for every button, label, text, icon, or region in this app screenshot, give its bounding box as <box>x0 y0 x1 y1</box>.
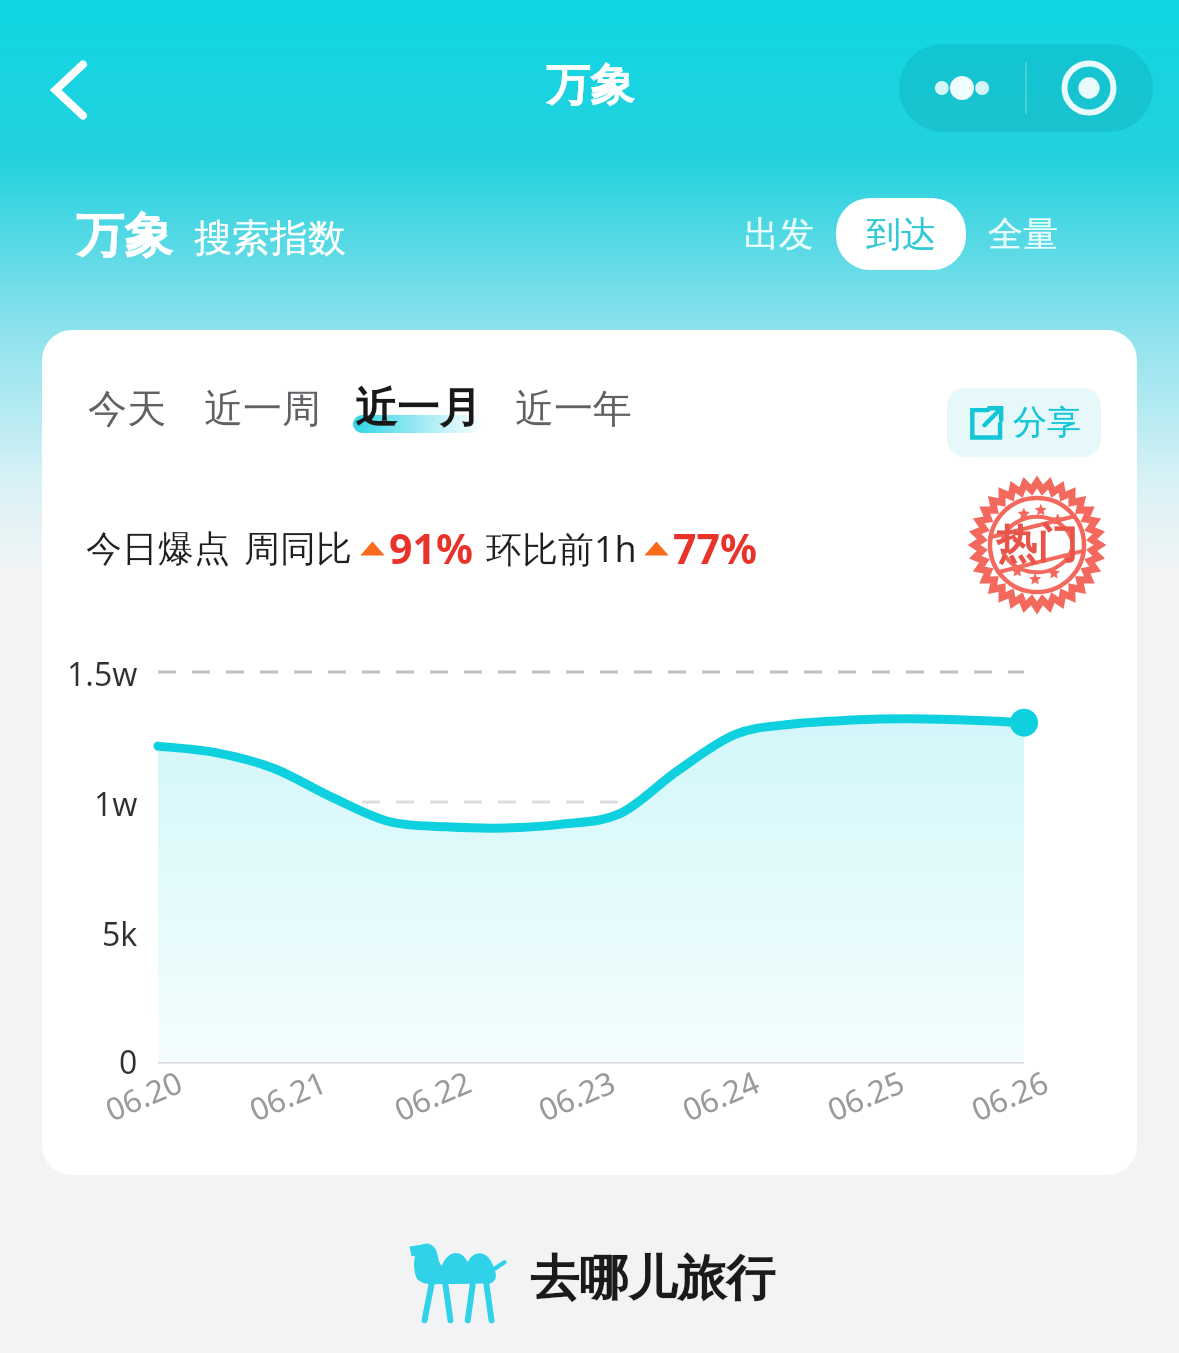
staticText: 万象 <box>546 58 634 113</box>
staticText: 1w <box>94 782 138 826</box>
staticText: 热门 <box>996 519 1078 571</box>
staticText: 搜索指数 <box>194 214 346 262</box>
button[interactable]: 分享 <box>947 388 1101 457</box>
button[interactable]: 更多 <box>899 44 1025 132</box>
staticText: 到达 <box>866 212 936 256</box>
button[interactable]: 到达 <box>836 198 966 270</box>
button[interactable]: 近一年 <box>513 384 634 433</box>
staticText: 06.22 <box>388 1060 478 1130</box>
button[interactable]: 返回 <box>34 50 106 130</box>
staticText: 去哪儿旅行 <box>530 1248 775 1310</box>
staticText: 今日爆点 <box>86 526 230 571</box>
staticText: 周同比 <box>244 526 352 571</box>
staticText: 今天 <box>88 384 166 433</box>
staticText: 万象 <box>76 206 172 266</box>
staticText: 近一月 <box>355 382 481 435</box>
button[interactable]: 胶囊菜单 <box>1027 44 1151 132</box>
staticText: 91% <box>389 520 473 576</box>
staticText: 近一年 <box>515 384 632 433</box>
button[interactable]: 今天 <box>86 384 168 433</box>
button[interactable]: 出发 <box>736 200 822 268</box>
staticText: 分享 <box>1013 401 1081 444</box>
staticText: 近一周 <box>204 384 321 433</box>
staticText: 环比前1h <box>486 524 637 573</box>
staticText: 全量 <box>988 212 1058 256</box>
staticText: 06.23 <box>532 1060 622 1130</box>
staticText: 0 <box>119 1040 138 1084</box>
button[interactable]: 近一周 <box>202 384 323 433</box>
staticText: 06.25 <box>821 1060 911 1130</box>
button[interactable]: 近一月 <box>353 382 483 435</box>
staticText: 77% <box>673 520 757 576</box>
staticText: 06.26 <box>965 1060 1055 1130</box>
staticText: 1.5w <box>67 652 138 696</box>
staticText: 06.24 <box>676 1060 766 1130</box>
staticText: 5k <box>102 912 138 956</box>
staticText: 06.20 <box>99 1060 189 1130</box>
button[interactable]: 全量 <box>980 200 1066 268</box>
staticText: 06.21 <box>243 1060 333 1130</box>
staticText: 出发 <box>744 212 814 256</box>
button[interactable]: 去哪儿旅行 <box>404 1235 775 1323</box>
